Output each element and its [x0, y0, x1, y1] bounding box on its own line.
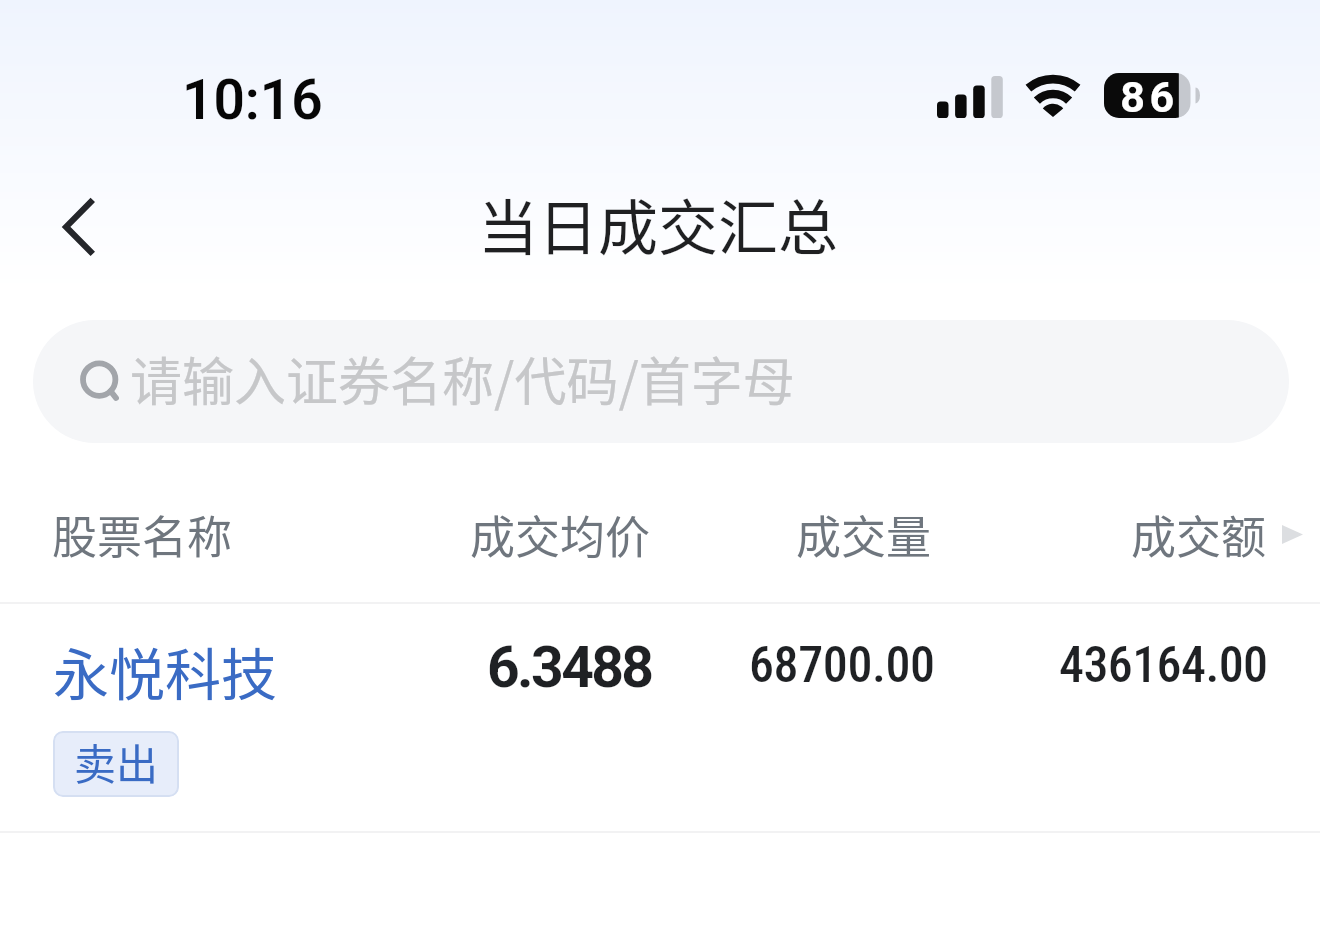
staticText: 86	[1111, 72, 1188, 118]
staticText: 股票名称	[52, 502, 233, 567]
staticText: 成交额	[1131, 502, 1267, 567]
staticText: 永悦科技	[53, 630, 277, 711]
staticText: 6.3488	[487, 634, 652, 701]
staticText: 68700.00	[749, 636, 935, 695]
staticText: 436164.00	[1059, 636, 1268, 695]
button[interactable]: 成交均价	[380, 496, 740, 572]
staticText: 卖出	[74, 731, 159, 792]
button[interactable]: More columns	[1274, 514, 1310, 554]
button[interactable]: 股票名称	[21, 496, 264, 572]
button[interactable]: 请输入证券名称/代码/首字母	[33, 320, 1289, 443]
button[interactable]: 成交量	[730, 496, 998, 572]
staticText: 当日成交汇总	[478, 180, 838, 267]
button[interactable]: Back	[38, 180, 118, 276]
button[interactable]: 成交额	[1114, 496, 1284, 572]
staticText: 成交量	[796, 502, 932, 567]
staticText: 请输入证券名称/代码/首字母	[130, 341, 795, 416]
staticText: 成交均价	[470, 502, 651, 567]
button[interactable]: 永悦科技	[0, 604, 1320, 832]
button[interactable]: 卖出	[53, 731, 179, 797]
staticText: 10:16	[182, 68, 323, 132]
